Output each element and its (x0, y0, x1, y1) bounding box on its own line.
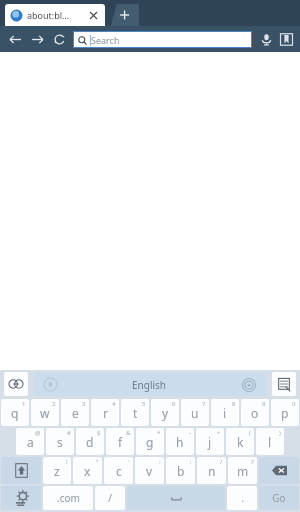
staticText: # (67, 429, 71, 437)
button[interactable]: i (211, 399, 239, 426)
staticText: a (27, 434, 34, 450)
staticText: 0 (292, 400, 296, 408)
button[interactable]: Emoji (4, 372, 28, 396)
staticText: / (220, 458, 223, 466)
button[interactable]: New tab (107, 4, 139, 26)
staticText: i (223, 405, 227, 421)
button[interactable]: r (91, 399, 119, 426)
button[interactable]: English (34, 373, 266, 396)
button[interactable]: n (197, 457, 226, 484)
staticText: 4 (112, 400, 116, 408)
staticText: b (177, 463, 185, 479)
button[interactable]: about:bl… (5, 4, 105, 26)
staticText: k (237, 434, 244, 450)
button[interactable]: x (73, 457, 102, 484)
staticText: 5 (142, 400, 146, 408)
staticText: t (133, 405, 138, 421)
staticText: x (84, 463, 91, 479)
staticText: ) (279, 429, 281, 437)
staticText: ? (251, 458, 254, 466)
staticText: 2 (52, 400, 56, 408)
staticText: z (54, 463, 60, 479)
button[interactable]: b (166, 457, 195, 484)
button[interactable]: g (136, 428, 164, 455)
staticText: l (268, 434, 272, 450)
staticText: f (118, 434, 123, 450)
staticText: + (217, 429, 221, 437)
staticText: " (96, 458, 99, 466)
button[interactable]: j (196, 428, 224, 455)
staticText: c (116, 463, 122, 479)
staticText: & (126, 429, 131, 437)
staticText: q (11, 405, 19, 421)
staticText: * (157, 429, 161, 437)
staticText: 1 (22, 400, 26, 408)
button[interactable]: m (228, 457, 257, 484)
button[interactable]: Go (259, 486, 299, 510)
staticText: v (146, 463, 153, 479)
staticText: Search (91, 34, 120, 46)
button[interactable]: a (16, 428, 44, 455)
button[interactable]: Close tab (87, 9, 99, 21)
staticText: j (208, 434, 212, 450)
button[interactable]: Space (127, 486, 225, 510)
staticText: s (57, 434, 63, 450)
staticText: u (191, 405, 199, 421)
button[interactable]: v (135, 457, 164, 484)
button[interactable]: Forward (26, 26, 48, 52)
button[interactable]: w (31, 399, 59, 426)
button[interactable]: Bookmarks (276, 26, 296, 52)
button[interactable]: e (61, 399, 89, 426)
button[interactable]: o (241, 399, 269, 426)
staticText: p (281, 405, 289, 421)
staticText: Go (272, 491, 286, 505)
staticText: English (132, 378, 167, 392)
staticText: : (159, 458, 161, 466)
button[interactable]: Keyboard settings (1, 486, 41, 510)
button[interactable]: Search (74, 32, 251, 47)
button[interactable]: Clipboard (272, 372, 296, 396)
button[interactable]: p (271, 399, 299, 426)
staticText: d (86, 434, 94, 450)
staticText: ! (66, 458, 68, 466)
staticText: o (251, 405, 259, 421)
staticText: e (72, 405, 79, 421)
button[interactable]: / (95, 486, 125, 510)
staticText: $ (97, 429, 101, 437)
staticText: r (103, 405, 108, 421)
button[interactable]: u (181, 399, 209, 426)
staticText: ; (190, 458, 192, 466)
button[interactable]: Backspace (259, 457, 299, 484)
button[interactable]: h (166, 428, 194, 455)
staticText: m (237, 463, 249, 479)
staticText: w (40, 405, 50, 421)
button[interactable]: f (106, 428, 134, 455)
staticText: ' (128, 458, 130, 466)
staticText: 8 (232, 400, 236, 408)
button[interactable]: Shift (1, 457, 41, 484)
button[interactable]: Voice search (256, 26, 276, 52)
button[interactable]: k (226, 428, 254, 455)
staticText: g (146, 434, 154, 450)
button[interactable]: .com (43, 486, 93, 510)
button[interactable]: Reload (48, 26, 70, 52)
button[interactable]: q (1, 399, 29, 426)
staticText: .com (57, 491, 80, 505)
button[interactable]: . (227, 486, 257, 510)
staticText: 6 (172, 400, 176, 408)
button[interactable]: s (46, 428, 74, 455)
staticText: @ (35, 429, 41, 437)
button[interactable]: d (76, 428, 104, 455)
staticText: h (176, 434, 184, 450)
button[interactable]: Back (4, 26, 26, 52)
button[interactable]: c (104, 457, 133, 484)
staticText: 3 (82, 400, 86, 408)
button[interactable]: t (121, 399, 149, 426)
button[interactable]: z (43, 457, 71, 484)
staticText: about:bl… (27, 9, 70, 21)
staticText: / (108, 491, 112, 505)
button[interactable]: y (151, 399, 179, 426)
staticText: y (162, 405, 169, 421)
staticText: - (189, 429, 191, 437)
button[interactable]: l (256, 428, 284, 455)
